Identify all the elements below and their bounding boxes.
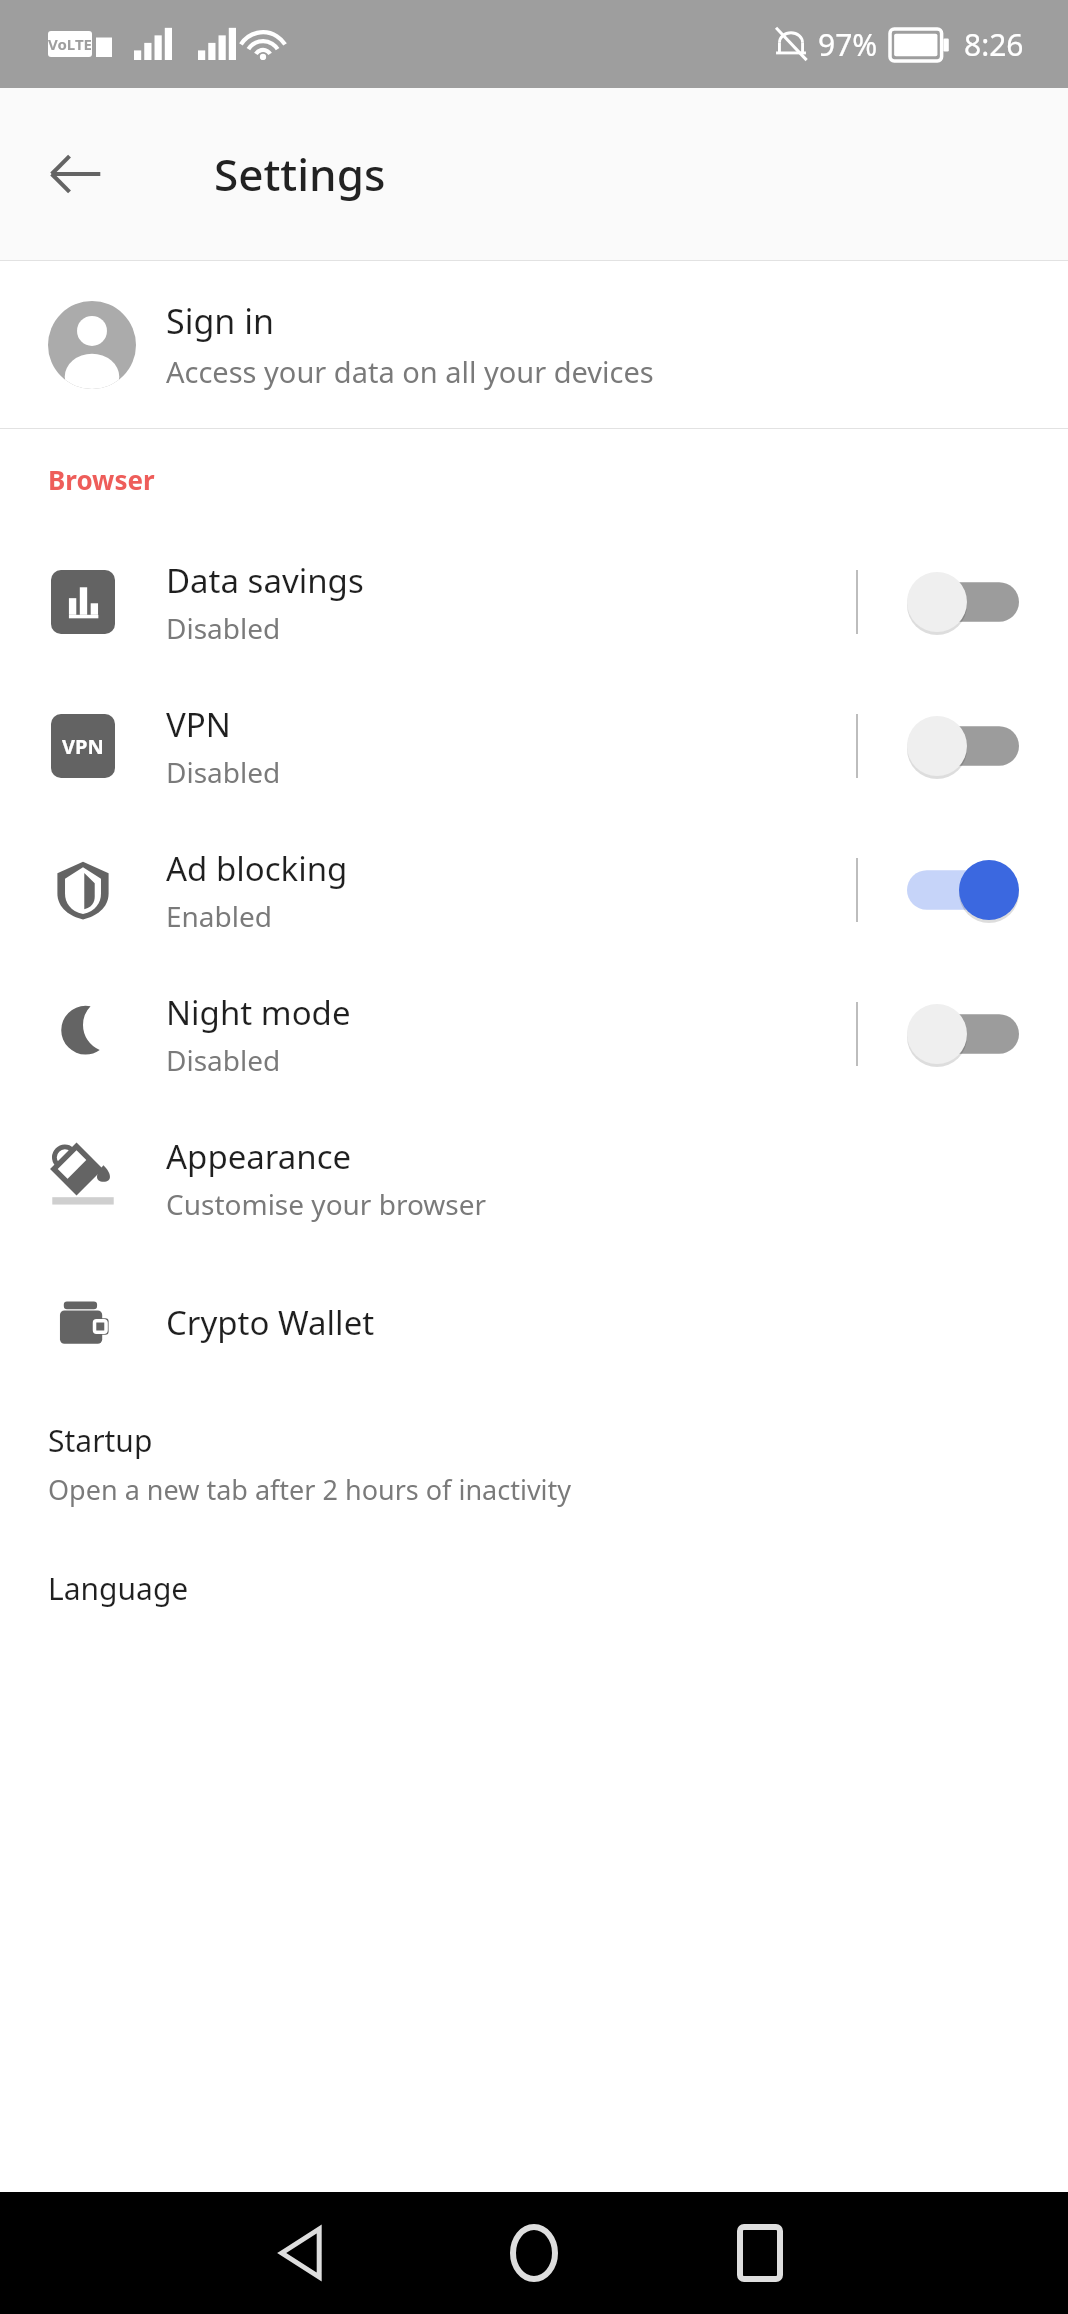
staticText: Customise your browser xyxy=(166,1185,487,1223)
staticText: VPN xyxy=(62,733,104,760)
button[interactable]: Home xyxy=(474,2193,594,2313)
button[interactable]: Data savings xyxy=(0,530,1068,674)
staticText: Language xyxy=(48,1568,189,1609)
staticText: VPN xyxy=(166,702,231,747)
button[interactable]: Ad blocking xyxy=(0,818,1068,962)
button[interactable]: Back xyxy=(240,2193,360,2313)
button[interactable]: Ad blocking toggle xyxy=(858,818,1068,962)
staticText: Settings xyxy=(214,144,386,204)
button[interactable]: Appearance xyxy=(0,1106,1068,1250)
button[interactable]: Back xyxy=(24,122,128,226)
staticText: 97% xyxy=(818,24,878,65)
staticText: 8:26 xyxy=(964,24,1024,65)
staticText: Disabled xyxy=(166,1041,281,1079)
staticText: Startup xyxy=(48,1420,153,1461)
staticText: Crypto Wallet xyxy=(166,1300,375,1345)
button[interactable]: Sign in xyxy=(0,261,1068,428)
staticText: Data savings xyxy=(166,558,364,603)
staticText: Access your data on all your devices xyxy=(166,352,654,391)
button[interactable]: VPN toggle xyxy=(858,674,1068,818)
button[interactable]: Crypto Wallet xyxy=(0,1250,1068,1394)
staticText: Ad blocking xyxy=(166,846,348,891)
button[interactable]: Recent apps xyxy=(700,2193,820,2313)
button[interactable]: Data savings toggle xyxy=(858,530,1068,674)
button[interactable]: Language xyxy=(0,1568,1068,2192)
staticText: Browser xyxy=(48,462,155,497)
staticText: VoLTE xyxy=(48,34,92,54)
staticText: Night mode xyxy=(166,990,351,1035)
staticText: Appearance xyxy=(166,1134,352,1179)
staticText: Enabled xyxy=(166,897,273,935)
staticText: Disabled xyxy=(166,609,281,647)
staticText: Disabled xyxy=(166,753,281,791)
button[interactable]: VPN xyxy=(0,674,1068,818)
button[interactable]: Night mode xyxy=(0,962,1068,1106)
button[interactable]: Night mode toggle xyxy=(858,962,1068,1106)
staticText: Sign in xyxy=(166,298,274,344)
button[interactable]: Startup xyxy=(0,1394,1068,1508)
staticText: Open a new tab after 2 hours of inactivi… xyxy=(48,1471,572,1508)
